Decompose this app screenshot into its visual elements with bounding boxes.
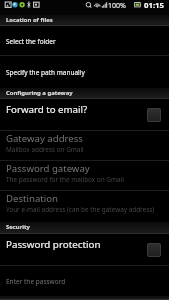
button[interactable]: Password protection [0, 234, 169, 266]
staticText: Configuring a gateway [6, 89, 73, 97]
staticText: Destination [6, 192, 58, 205]
staticText: Location of files [6, 16, 53, 24]
staticText: Enter the password [6, 277, 66, 286]
staticText: Specify the path manually [6, 68, 85, 77]
staticText: 100% [108, 1, 126, 11]
button[interactable]: Destination [0, 191, 169, 222]
other: Toggle Password protection [147, 243, 161, 257]
button[interactable]: Gateway address [0, 131, 169, 161]
staticText: Security [6, 223, 30, 231]
staticText: Notifications [6, 297, 45, 300]
staticText: Password gateway [6, 162, 90, 175]
staticText: Password protection [6, 238, 101, 251]
other: Toggle Forward to email? [147, 108, 161, 122]
button[interactable]: Select the folder [0, 26, 169, 56]
staticText: The password for the mailbox on Gmail [6, 175, 124, 184]
button[interactable]: Password gateway [0, 161, 169, 191]
button[interactable]: Specify the path manually [0, 56, 169, 88]
staticText: 01:15 [144, 0, 165, 11]
staticText: Forward to email? [6, 103, 88, 116]
staticText: Select the folder [6, 37, 56, 46]
staticText: Your e-mail address (can be the gateway … [6, 205, 155, 214]
button[interactable]: Forward to email? [0, 99, 169, 131]
button[interactable]: Enter the password [0, 266, 169, 296]
staticText: Gateway address [6, 132, 83, 145]
staticText: Mailbox address on Gmail [6, 145, 84, 154]
